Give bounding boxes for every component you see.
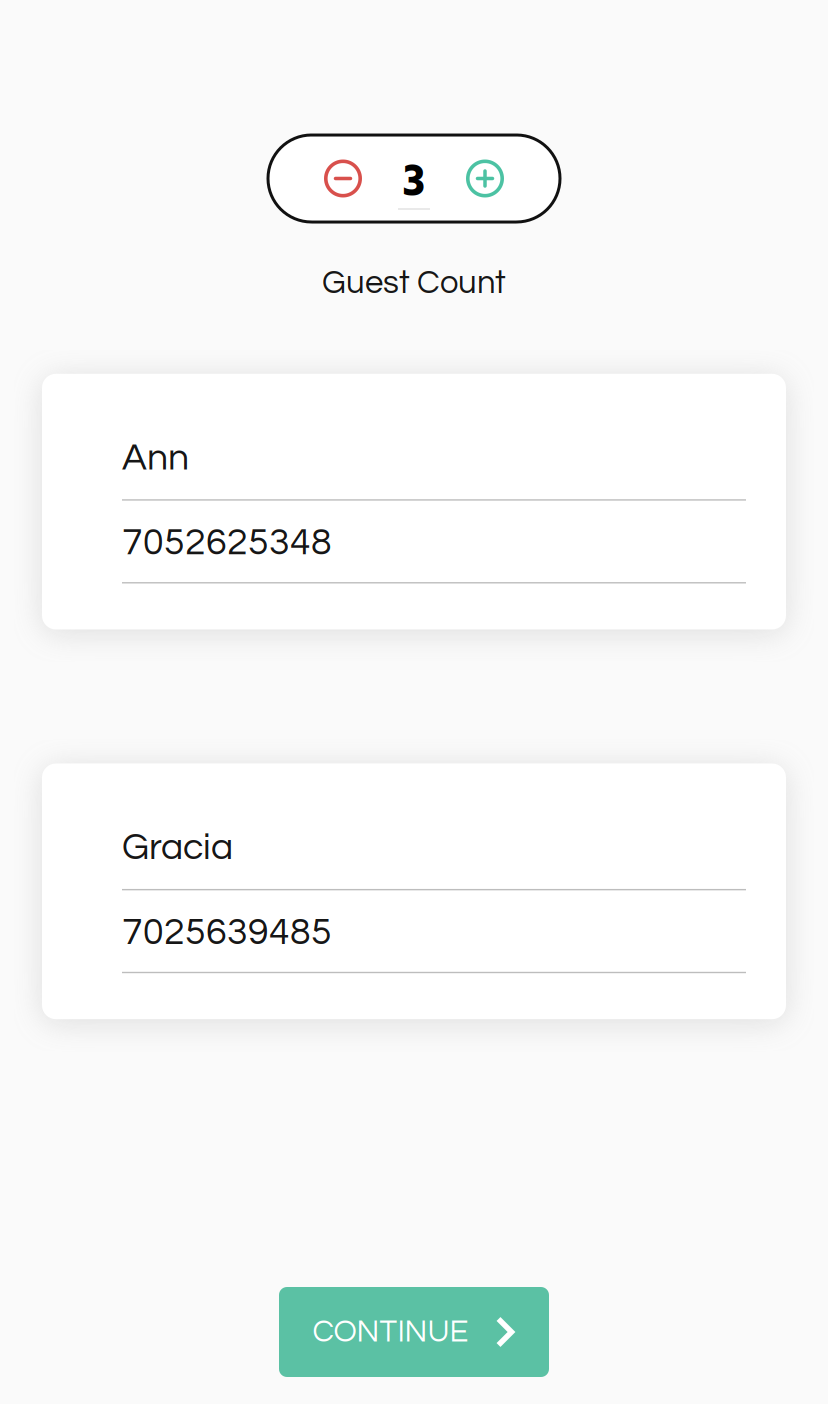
staticText: 3 [402, 146, 425, 221]
button[interactable]: Increase guest count [457, 148, 513, 208]
staticText: CONTINUE [312, 1316, 468, 1348]
staticText: Gracia [122, 828, 233, 867]
staticText: Ann [122, 439, 189, 477]
staticText: 7025639485 [122, 913, 332, 952]
staticText: Guest Count [322, 266, 506, 300]
staticText: 7052625348 [122, 524, 332, 562]
button[interactable]: CONTINUE [279, 1287, 549, 1377]
button[interactable]: Decrease guest count [315, 148, 371, 208]
